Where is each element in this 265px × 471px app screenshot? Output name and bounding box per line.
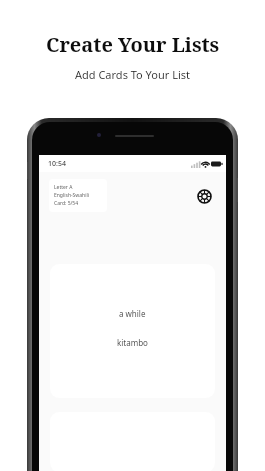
staticText: kitambo [117,337,148,348]
button[interactable]: Letter A [49,179,107,212]
staticText: Card: 5/54 [54,200,79,207]
staticText: 10:54 [48,159,66,169]
staticText: a while [119,308,146,319]
staticText: Create Your Lists [46,31,220,58]
staticText: Add Cards To Your List [75,67,190,82]
button[interactable]: Settings [192,184,216,208]
button[interactable]: a while [50,264,215,398]
staticText: English-Swahili [54,192,90,199]
staticText: Letter A [54,184,73,191]
